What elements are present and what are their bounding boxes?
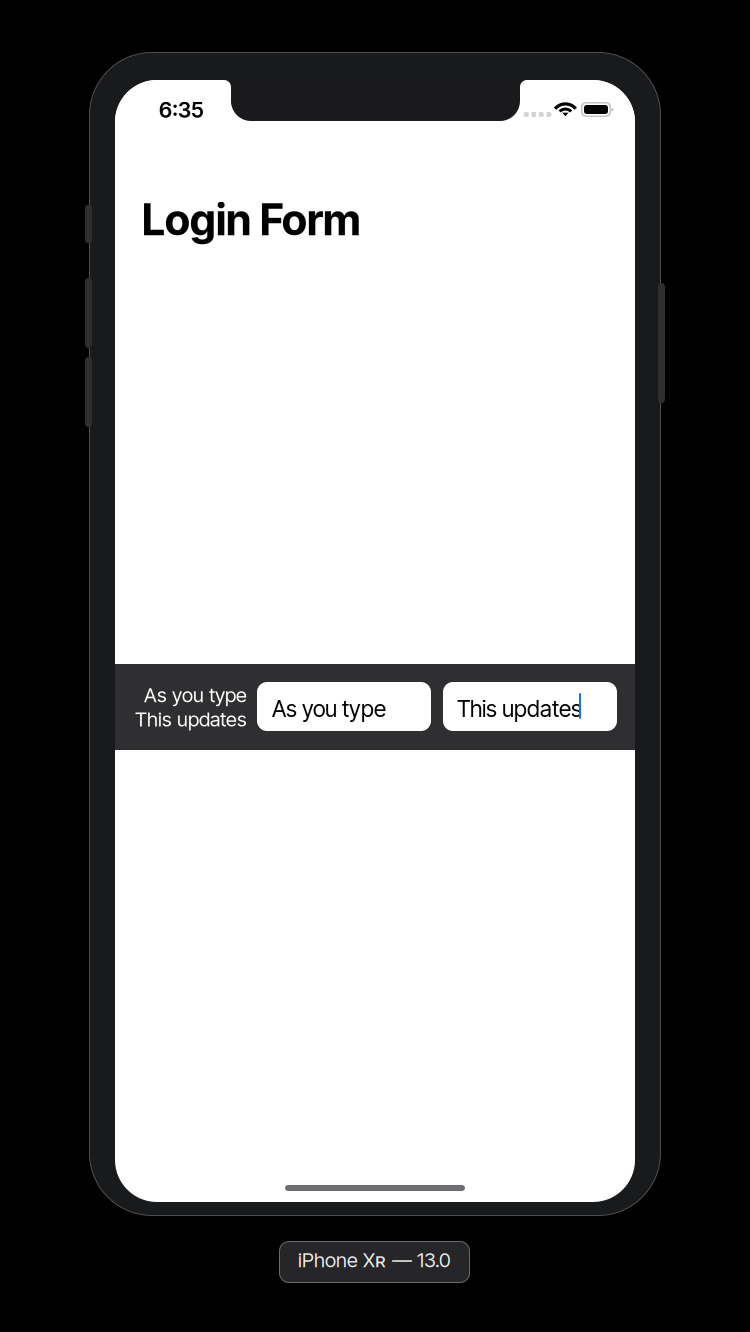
staticText: iPhone Xʀ — 13.0 (298, 1248, 451, 1272)
staticText: As you type (272, 695, 386, 722)
button[interactable]: As you type (257, 682, 431, 731)
staticText: Login Form (142, 194, 361, 246)
staticText: As you type (144, 683, 247, 707)
button[interactable]: Volume Up (85, 278, 92, 348)
staticText: 6:35 (159, 97, 204, 123)
button[interactable]: Ring/Silent switch (85, 205, 92, 243)
staticText: This updates (135, 707, 247, 731)
button[interactable]: This updates (443, 682, 617, 731)
button[interactable]: Volume Down (85, 357, 92, 427)
staticText: This updates (457, 695, 582, 722)
button[interactable]: Side button (658, 283, 665, 403)
